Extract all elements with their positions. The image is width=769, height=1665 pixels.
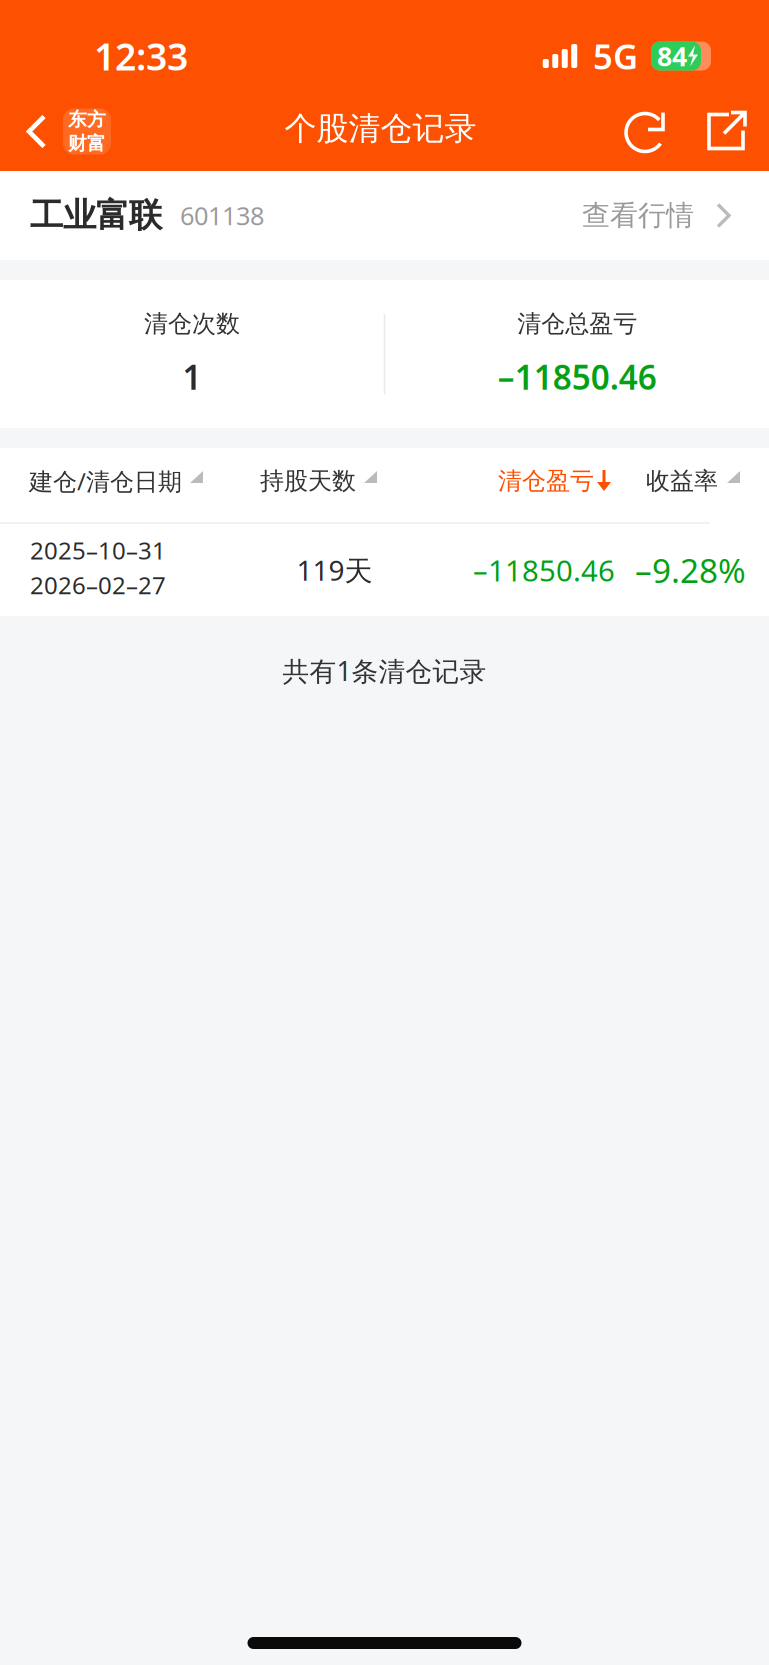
staticText: 东方: [68, 108, 106, 131]
button[interactable]: Share: [698, 92, 756, 171]
staticText: –11850.46: [473, 550, 615, 589]
staticText: 持股天数: [260, 466, 356, 496]
staticText: 清仓总盈亏: [517, 309, 637, 339]
staticText: 12:33: [94, 31, 188, 81]
button[interactable]: 工业富联: [0, 171, 769, 260]
button[interactable]: 持股天数: [260, 448, 400, 522]
staticText: 收益率: [646, 466, 718, 496]
button[interactable]: 2025–10–31: [0, 524, 769, 616]
staticText: 601138: [180, 199, 264, 232]
staticText: –11850.46: [498, 355, 657, 399]
staticText: 查看行情: [582, 198, 694, 233]
staticText: 建仓/清仓日期: [29, 465, 182, 497]
button[interactable]: 收益率: [646, 448, 740, 522]
staticText: 84: [657, 38, 687, 74]
staticText: –9.28%: [635, 548, 746, 592]
staticText: 5G: [593, 33, 638, 79]
staticText: 清仓次数: [144, 309, 240, 339]
staticText: 工业富联: [30, 195, 162, 236]
button[interactable]: Back: [0, 92, 119, 171]
button[interactable]: Refresh: [618, 92, 676, 171]
staticText: 共有1条清仓记录: [282, 653, 486, 688]
button[interactable]: 建仓/清仓日期: [0, 448, 260, 522]
staticText: 个股清仓记录: [284, 109, 476, 148]
button[interactable]: 清仓盈亏: [498, 448, 612, 522]
staticText: 1: [182, 355, 201, 399]
staticText: 清仓盈亏: [498, 466, 594, 496]
staticText: 2026–02–27: [30, 569, 166, 601]
staticText: 财富: [68, 132, 106, 155]
staticText: 2025–10–31: [30, 534, 166, 566]
staticText: 119天: [296, 551, 372, 589]
